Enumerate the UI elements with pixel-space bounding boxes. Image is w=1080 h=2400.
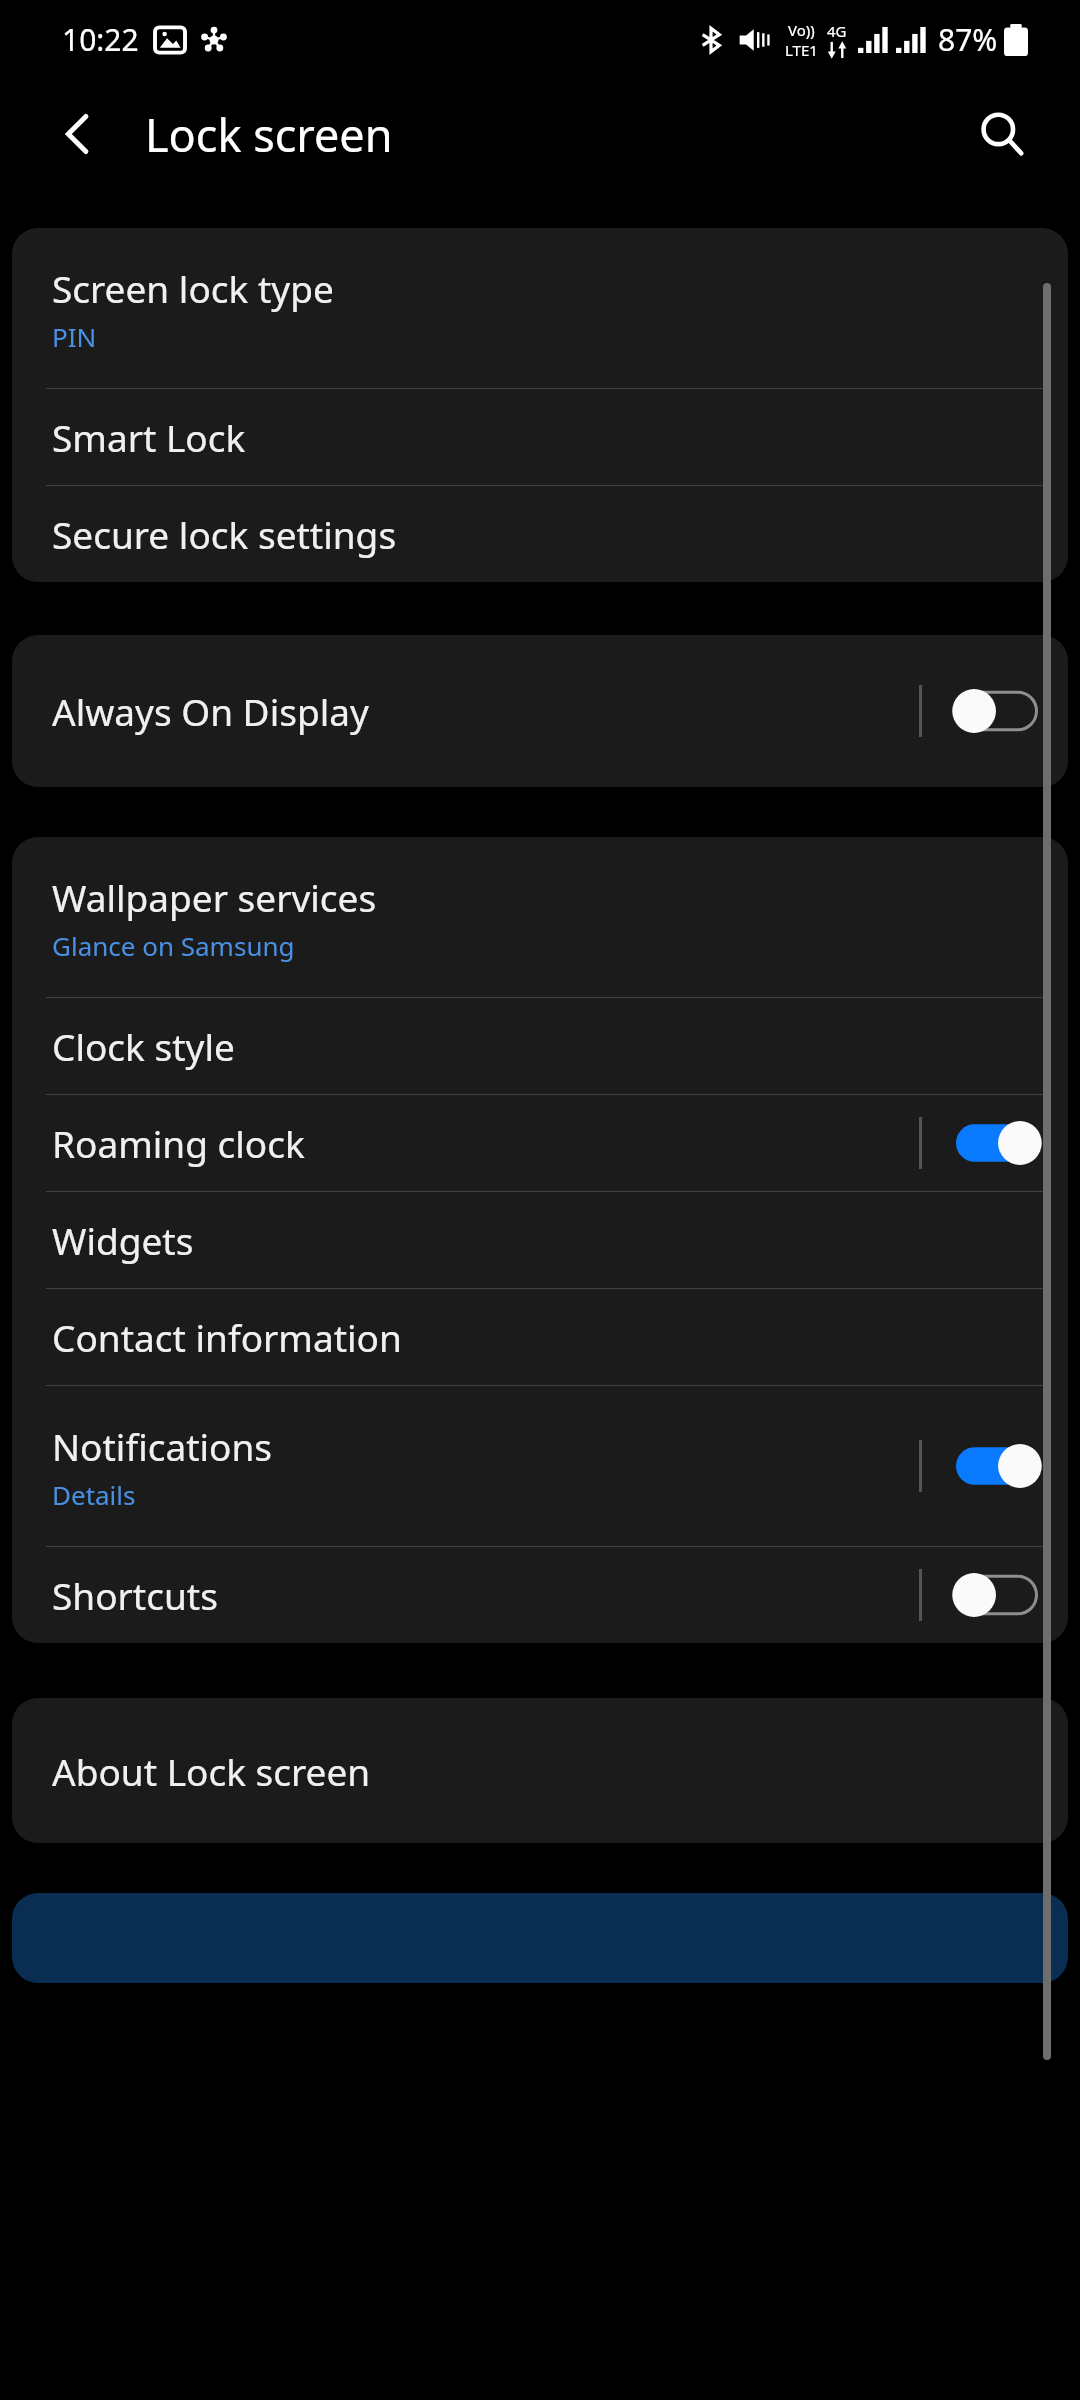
button[interactable]: Widgets bbox=[12, 1192, 1068, 1288]
button[interactable]: Back bbox=[28, 84, 128, 184]
staticText: Shortcuts bbox=[52, 1570, 218, 1620]
button[interactable]: Secure lock settings bbox=[12, 486, 1068, 582]
staticText: Screen lock type bbox=[52, 263, 334, 313]
staticText: 87% bbox=[938, 19, 998, 60]
staticText: LTE1 bbox=[785, 40, 818, 60]
staticText: Widgets bbox=[52, 1215, 194, 1265]
staticText: Notifications bbox=[52, 1421, 273, 1471]
button[interactable]: Off bbox=[956, 1572, 1038, 1618]
button[interactable]: Off bbox=[956, 688, 1038, 734]
button[interactable]: About Lock screen bbox=[12, 1698, 1068, 1843]
button[interactable]: Screen lock type bbox=[12, 228, 1068, 388]
staticText: Glance on Samsung bbox=[52, 928, 295, 963]
button[interactable]: On bbox=[956, 1120, 1038, 1166]
button[interactable]: Contact information bbox=[12, 1289, 1068, 1385]
staticText: Vo)) bbox=[788, 20, 815, 40]
button[interactable]: Clock style bbox=[12, 998, 1068, 1094]
button[interactable]: Notifications bbox=[12, 1386, 1068, 1546]
staticText: Secure lock settings bbox=[52, 509, 397, 559]
staticText: Roaming clock bbox=[52, 1118, 305, 1168]
button[interactable]: Roaming clock bbox=[12, 1095, 1068, 1191]
staticText: 4G bbox=[827, 21, 847, 41]
staticText: Always On Display bbox=[52, 686, 369, 736]
staticText: Clock style bbox=[52, 1021, 235, 1071]
staticText: Smart Lock bbox=[52, 412, 246, 462]
staticText: PIN bbox=[52, 319, 97, 354]
button[interactable]: On bbox=[956, 1443, 1038, 1489]
button[interactable]: Shortcuts bbox=[12, 1547, 1068, 1643]
staticText: About Lock screen bbox=[52, 1746, 371, 1796]
button[interactable] bbox=[12, 1893, 1068, 1983]
button[interactable]: Wallpaper services bbox=[12, 837, 1068, 997]
button[interactable]: Smart Lock bbox=[12, 389, 1068, 485]
staticText: 10:22 bbox=[62, 19, 139, 60]
button[interactable]: Search bbox=[952, 84, 1052, 184]
staticText: Wallpaper services bbox=[52, 872, 377, 922]
staticText: Details bbox=[52, 1477, 136, 1512]
staticText: Contact information bbox=[52, 1312, 402, 1362]
button[interactable]: Always On Display bbox=[12, 635, 1068, 787]
staticText: Lock screen bbox=[145, 104, 393, 165]
